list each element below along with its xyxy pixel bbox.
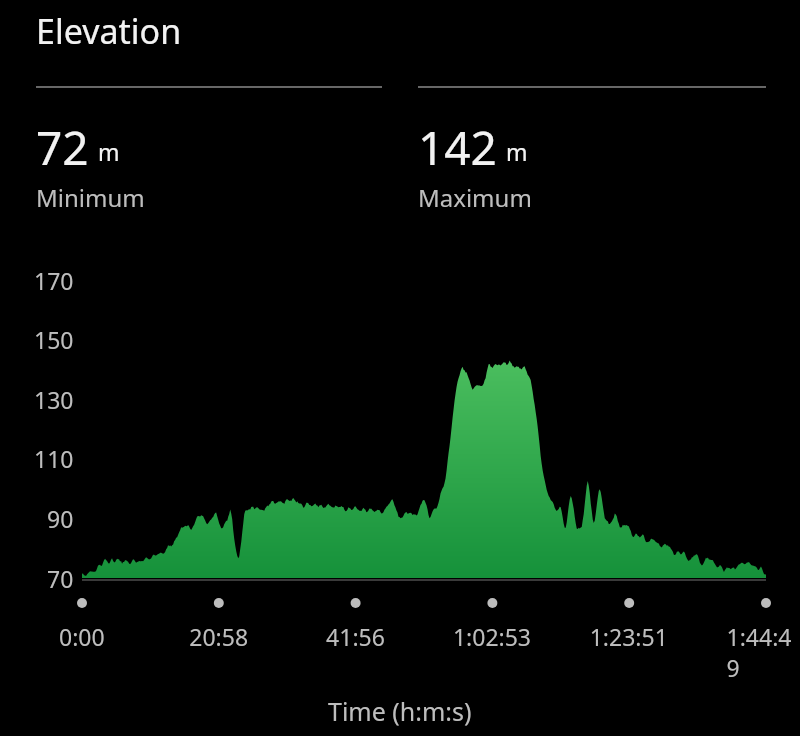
button[interactable] [0,0,800,736]
